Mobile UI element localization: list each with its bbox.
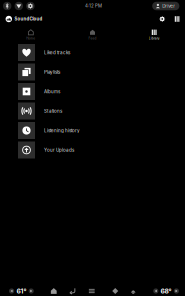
button[interactable]: Library (123, 26, 185, 42)
button[interactable]: Notifications (130, 287, 137, 294)
button[interactable]: Albums (0, 83, 185, 100)
button[interactable]: Stations (0, 102, 185, 119)
button[interactable]: Add (112, 287, 119, 294)
staticText: Listening history (44, 128, 80, 133)
button[interactable]: SoundCloud (0, 16, 43, 22)
staticText: Library (149, 36, 160, 40)
button[interactable]: Listening history (0, 122, 185, 139)
button[interactable]: Queue (172, 16, 182, 22)
button[interactable]: Settings (155, 16, 172, 22)
staticText: Liked tracks (44, 50, 70, 55)
staticText: Albums (44, 89, 60, 94)
staticText: 4:12 PM (85, 3, 102, 9)
button[interactable]: Home (0, 26, 62, 42)
staticText: 68° (161, 287, 172, 295)
button[interactable]: Liked tracks (0, 44, 185, 61)
staticText: Playlists (44, 69, 60, 75)
button[interactable]: Home (50, 287, 57, 294)
staticText: Your Uploads (44, 147, 74, 153)
button[interactable]: Feed (62, 26, 123, 42)
button[interactable]: Driver (152, 2, 179, 10)
staticText: 61° (16, 287, 26, 295)
staticText: Driver (162, 3, 175, 9)
staticText: Home (26, 36, 35, 40)
button[interactable]: Playlists (0, 63, 185, 80)
staticText: SoundCloud (15, 16, 43, 22)
button[interactable]: Your Uploads (0, 141, 185, 158)
button[interactable]: Back (69, 287, 76, 294)
staticText: Stations (44, 108, 62, 114)
staticText: Feed (88, 36, 96, 40)
button[interactable]: Recents (88, 287, 95, 294)
